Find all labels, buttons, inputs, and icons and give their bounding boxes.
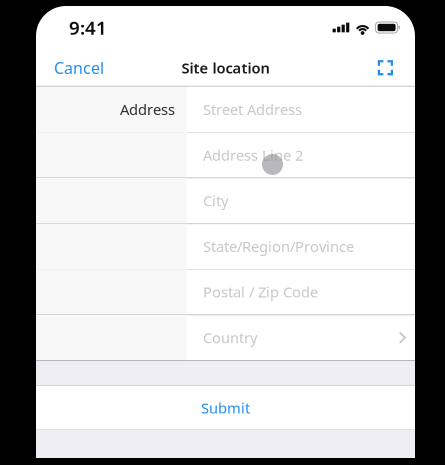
staticText: Submit (201, 398, 250, 418)
button[interactable]: Postal / Zip Code (36, 269, 415, 315)
staticText: Cancel (54, 57, 104, 78)
button[interactable]: Country (36, 315, 415, 360)
button[interactable]: Submit (36, 386, 415, 430)
button[interactable]: Scan (368, 51, 396, 84)
button[interactable]: City (36, 178, 415, 223)
staticText: Street Address (203, 100, 302, 119)
staticText: 9:41 (69, 15, 107, 40)
button[interactable]: State/Region/Province (36, 223, 415, 269)
staticText: City (203, 191, 228, 210)
staticText: Address (120, 100, 175, 119)
staticText: Postal / Zip Code (203, 282, 318, 302)
staticText: Site location (181, 58, 269, 77)
staticText: State/Region/Province (203, 236, 354, 256)
button[interactable]: Address Line 2 (36, 132, 415, 178)
button[interactable]: Cancel (54, 48, 114, 87)
staticText: Country (203, 328, 257, 347)
button[interactable]: Address (36, 86, 415, 132)
staticText: Address Line 2 (203, 145, 303, 165)
